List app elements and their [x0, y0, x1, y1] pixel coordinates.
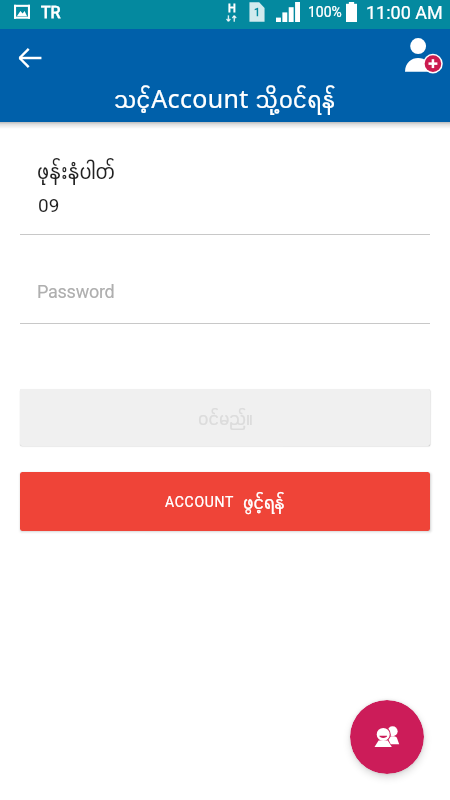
staticText: 11:00 AM: [366, 2, 443, 23]
button[interactable]: Add account: [401, 33, 445, 77]
staticText: ဖုန်းနံပါတ်: [37, 157, 116, 185]
staticText: သင့်Account သို့ဝင်ရန်: [114, 81, 336, 115]
staticText: ဝင်မည်။: [198, 406, 253, 430]
staticText: H: [228, 2, 236, 15]
staticText: ACCOUNT: [165, 494, 235, 510]
staticText: TR: [41, 3, 61, 22]
staticText: 100%: [308, 4, 342, 20]
staticText: ဖွင့်ရန်: [243, 490, 285, 514]
button[interactable]: Contacts: [350, 700, 424, 774]
staticText: Password: [37, 281, 115, 302]
button[interactable]: Back: [8, 36, 52, 80]
button[interactable]: ACCOUNT: [20, 472, 430, 531]
staticText: 1: [254, 6, 261, 19]
staticText: 09: [38, 194, 60, 216]
